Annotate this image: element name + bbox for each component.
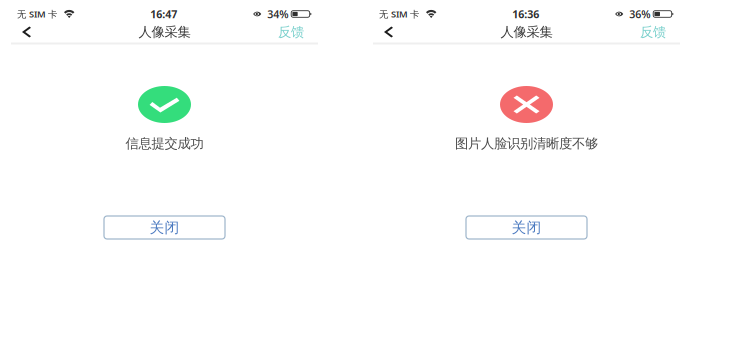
staticText: 16:36 (512, 7, 539, 21)
staticText: 34% (267, 7, 288, 21)
button[interactable]: 反馈 (270, 22, 304, 42)
staticText: 关闭 (511, 218, 541, 236)
staticText: 无 SIM 卡 (379, 8, 419, 20)
staticText: 反馈 (278, 24, 304, 40)
staticText: 无 SIM 卡 (17, 8, 57, 20)
staticText: 36% (629, 7, 650, 21)
staticText: 关闭 (149, 218, 179, 236)
button[interactable]: Back (384, 22, 414, 42)
staticText: 信息提交成功 (125, 135, 203, 152)
staticText: 16:47 (150, 7, 177, 21)
staticText: 人像采集 (500, 24, 552, 40)
staticText: 图片人脸识别清晰度不够 (455, 135, 598, 152)
button[interactable]: 关闭 (466, 216, 587, 239)
button[interactable]: 关闭 (104, 216, 225, 239)
staticText: 反馈 (640, 24, 666, 40)
button[interactable]: Back (22, 22, 52, 42)
staticText: 人像采集 (138, 24, 190, 40)
button[interactable]: 反馈 (632, 22, 666, 42)
